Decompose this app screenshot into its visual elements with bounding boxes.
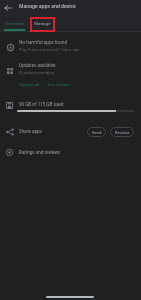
button[interactable] (0, 36, 141, 58)
staticText: Manage (34, 20, 51, 26)
staticText: Manage apps and device (19, 3, 76, 10)
button[interactable] (0, 59, 141, 81)
staticText: Send (92, 130, 102, 135)
staticText: Play Protect scanned 1 hour ago (19, 47, 80, 52)
staticText: 3 updates pending (19, 70, 55, 75)
button[interactable]: Back (1, 1, 14, 14)
staticText: Share apps (19, 128, 42, 134)
staticText: Updates available (19, 62, 56, 68)
staticText: Receive (115, 130, 130, 135)
button[interactable]: Send (87, 127, 106, 137)
staticText: Overview (5, 20, 25, 26)
button[interactable] (0, 122, 141, 142)
button[interactable]: Update all (16, 79, 43, 90)
staticText: Ratings and reviews (19, 149, 61, 155)
button[interactable]: See details (45, 79, 73, 90)
staticText: No harmful apps found (19, 39, 68, 45)
staticText: See details (48, 82, 70, 88)
staticText: Update all (19, 82, 40, 88)
button[interactable] (0, 96, 141, 118)
button[interactable]: Manage (29, 16, 55, 30)
staticText: 96 GB of 115 GB used (19, 101, 64, 107)
button[interactable]: Overview (0, 16, 29, 30)
button[interactable] (0, 144, 141, 162)
button[interactable]: Receive (110, 127, 134, 137)
